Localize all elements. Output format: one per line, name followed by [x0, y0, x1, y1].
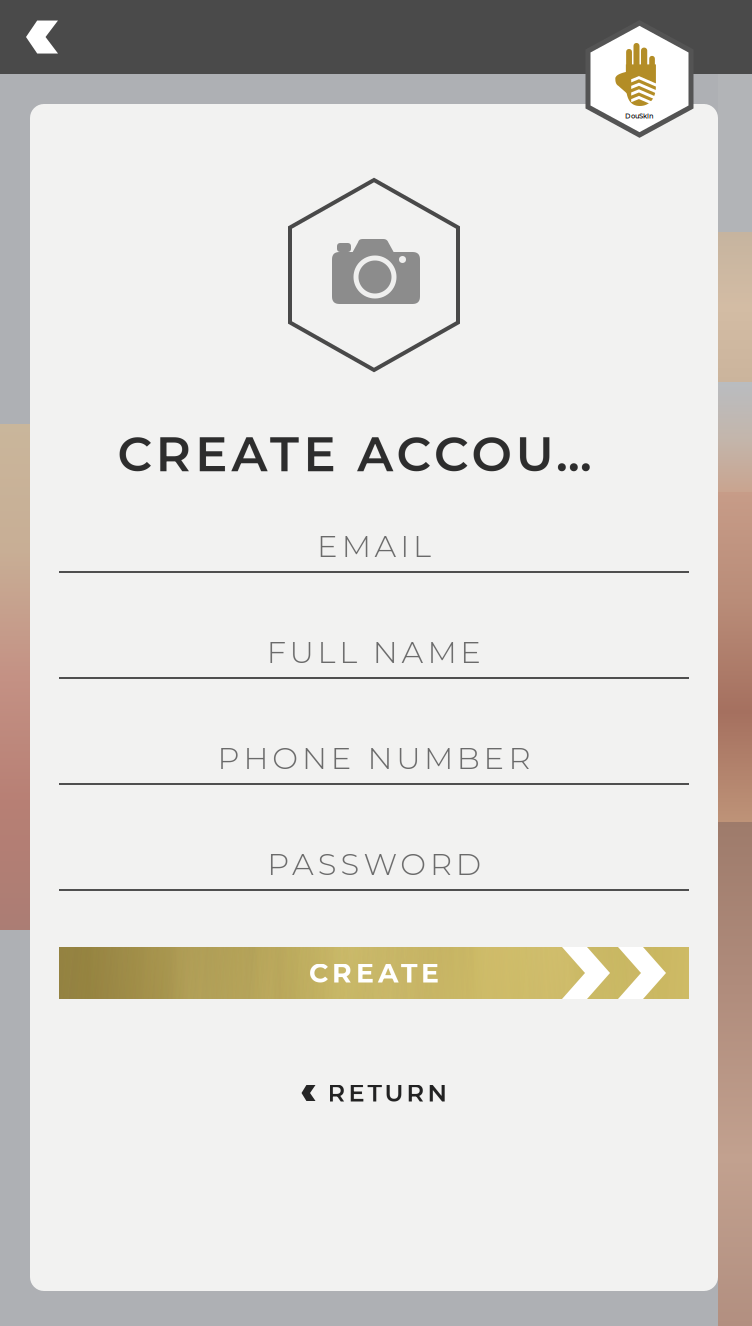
button[interactable]: Back — [0, 0, 84, 74]
staticText: CREATE — [309, 957, 439, 989]
staticText: PASSWORD — [267, 845, 481, 883]
staticText: PHONE NUMBER — [218, 739, 530, 777]
staticText: DouSkin — [625, 112, 654, 120]
button[interactable]: RETURN — [30, 1070, 718, 1116]
button[interactable]: DouSkin — [588, 23, 691, 135]
staticText: RETURN — [327, 1078, 446, 1108]
staticText: EMAIL — [317, 527, 431, 565]
button[interactable]: CREATE — [59, 947, 689, 999]
staticText: CREATE ACCOUNT — [117, 425, 631, 483]
staticText: FULL NAME — [267, 633, 481, 671]
